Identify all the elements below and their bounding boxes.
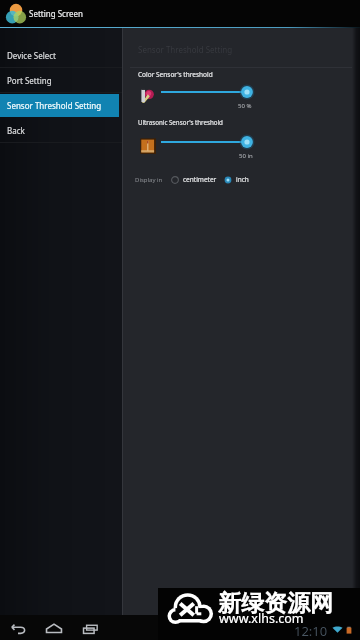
button[interactable]: Home (43, 618, 65, 640)
button[interactable]: Back (0, 118, 122, 143)
button[interactable]: Recent apps (80, 618, 102, 640)
staticText: www.xlhs.com (219, 610, 304, 627)
button[interactable]: centimeter (170, 173, 218, 186)
staticText: Ultrasonic Sensor's threshold (138, 118, 223, 126)
button[interactable]: Port Setting (0, 68, 122, 93)
staticText: Color Sensor's threshold (138, 70, 213, 79)
staticText: 12:10 (294, 622, 328, 640)
button[interactable]: Device Select (0, 43, 122, 68)
staticText: 50 % (238, 102, 252, 110)
button[interactable]: Threshold slider (160, 85, 291, 99)
staticText: inch (236, 175, 249, 184)
staticText: Sensor Threshold Setting (7, 100, 102, 111)
staticText: Setting Screen (29, 8, 84, 19)
staticText: Port Setting (7, 75, 52, 86)
staticText: 新绿资源网 (218, 589, 333, 618)
staticText: Display in (135, 176, 163, 184)
button[interactable]: inch (223, 173, 250, 186)
button[interactable]: Threshold slider (160, 135, 291, 149)
staticText: Back (7, 125, 25, 136)
staticText: Device Select (7, 50, 56, 61)
button[interactable]: Sensor Threshold Setting (0, 93, 122, 118)
staticText: centimeter (183, 175, 217, 184)
staticText: 50 in (239, 152, 253, 160)
button[interactable]: Back (7, 618, 29, 640)
staticText: Sensor Threshold Setting (138, 44, 233, 55)
